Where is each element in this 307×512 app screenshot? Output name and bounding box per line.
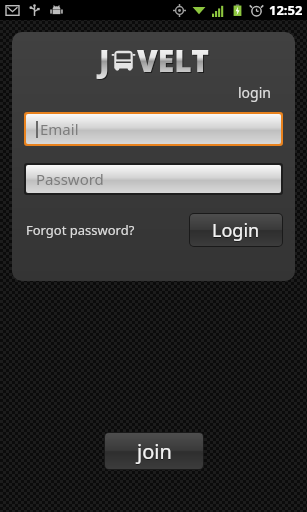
staticText: VELT — [137, 40, 209, 81]
staticText: Email — [40, 119, 79, 139]
staticText: VELT — [138, 41, 210, 82]
staticText: join — [137, 439, 172, 466]
staticText: login — [238, 83, 271, 102]
button[interactable]: Password — [26, 165, 281, 193]
staticText: join — [137, 438, 172, 465]
staticText: Password — [36, 169, 104, 189]
staticText: Forgot password? — [26, 221, 135, 239]
button[interactable]: Forgot password? — [24, 215, 137, 245]
staticText: Login — [212, 219, 260, 244]
staticText: J — [99, 40, 110, 81]
staticText: 12:52 — [269, 1, 303, 19]
button[interactable]: Email — [26, 114, 281, 144]
button[interactable]: Login — [190, 214, 282, 246]
staticText: Login — [212, 218, 260, 243]
button[interactable]: join — [105, 433, 203, 469]
staticText: J — [100, 41, 111, 82]
